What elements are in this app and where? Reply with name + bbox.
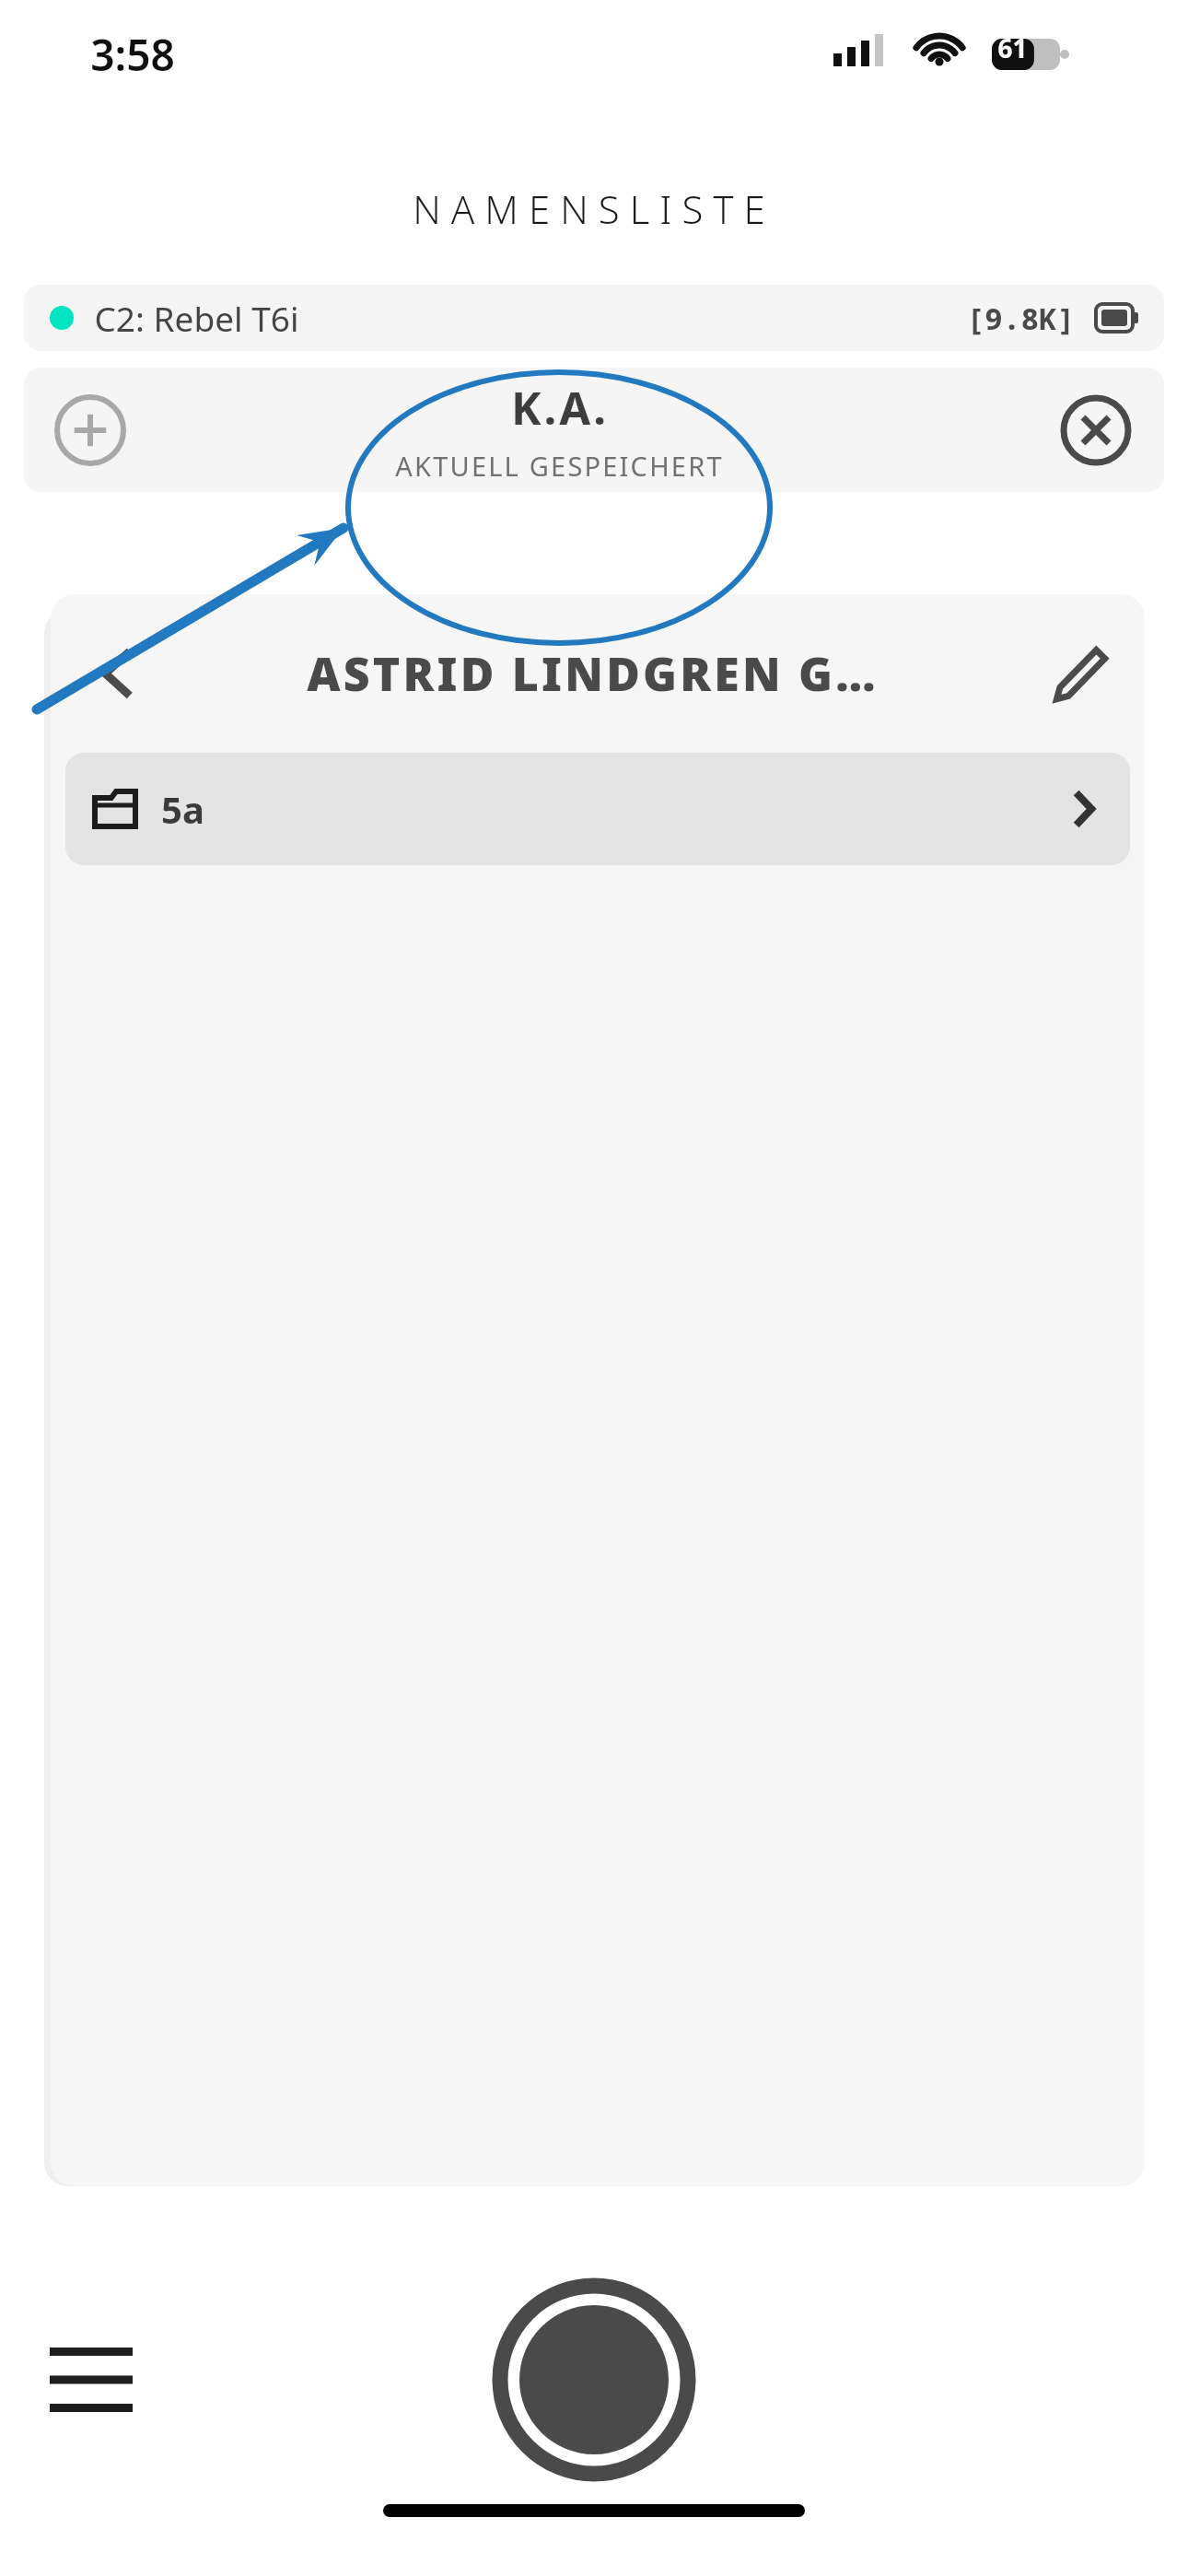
staticText: 3:58 — [90, 26, 175, 84]
button[interactable]: Aufnahme — [488, 2274, 700, 2486]
staticText: C2: Rebel T6i — [94, 295, 299, 341]
staticText: K.A. — [511, 377, 609, 439]
staticText: NAMENSLISTE — [413, 182, 775, 235]
button[interactable]: K.A. — [395, 377, 724, 484]
button[interactable]: Neue Liste hinzufügen — [46, 386, 134, 474]
button[interactable]: C2: Rebel T6i — [24, 285, 1164, 351]
button[interactable]: Zurück — [69, 623, 170, 724]
staticText: AKTUELL GESPEICHERT — [395, 448, 724, 484]
button[interactable]: Liste schließen — [1050, 384, 1142, 476]
staticText: [9.8K] — [966, 298, 1076, 339]
button[interactable]: Bearbeiten — [1032, 626, 1128, 721]
button[interactable]: 5a — [65, 753, 1130, 865]
staticText: 61 — [997, 30, 1028, 65]
staticText: ASTRID LINDGREN G… — [307, 642, 879, 705]
button[interactable]: ASTRID LINDGREN G… — [307, 642, 879, 705]
staticText: 5a — [161, 784, 204, 834]
button[interactable]: Menü — [22, 2324, 160, 2435]
